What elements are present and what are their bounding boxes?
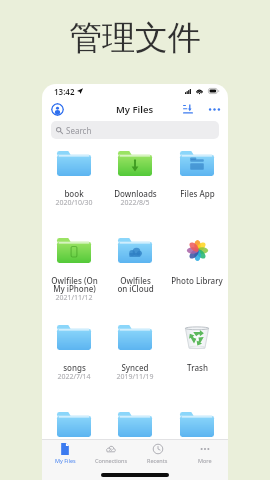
button[interactable]: My Files: [42, 443, 88, 464]
button[interactable]: Downloads: [105, 151, 165, 209]
staticText: Downloads: [114, 188, 157, 199]
button[interactable]: More: [181, 443, 228, 464]
button[interactable]: Search: [51, 121, 219, 139]
staticText: 2022/8/5: [120, 198, 150, 208]
button[interactable]: Account: [51, 103, 64, 116]
staticText: 2020/10/30: [55, 198, 93, 208]
button[interactable]: songs: [44, 325, 104, 383]
staticText: Connections: [95, 457, 128, 464]
staticText: Trash: [187, 362, 208, 373]
staticText: Recents: [147, 457, 168, 464]
staticText: More: [198, 457, 212, 464]
staticText: 13:42: [54, 86, 75, 96]
button[interactable]: Sort: [181, 102, 195, 116]
button[interactable]: More options: [207, 102, 221, 116]
staticText: My Files: [116, 103, 154, 116]
button[interactable]: Connections: [88, 443, 134, 464]
staticText: Files App: [180, 188, 215, 199]
button[interactable]: Trash: [167, 325, 227, 373]
staticText: Synced: [121, 362, 149, 373]
staticText: 2021/11/12: [55, 293, 93, 303]
button[interactable]: Files App: [167, 151, 227, 199]
button[interactable]: Owlfiles on iCloud: [105, 238, 165, 294]
staticText: 2022/7/14: [57, 372, 91, 382]
staticText: 管理文件: [69, 17, 201, 59]
staticText: songs: [63, 362, 86, 373]
button[interactable]: Owlfiles (On My iPhone): [44, 238, 104, 304]
staticText: Photo Library: [171, 275, 223, 286]
button[interactable]: Synced: [105, 325, 165, 383]
staticText: My Files: [55, 457, 76, 464]
button[interactable]: book: [44, 151, 104, 209]
staticText: Owlfiles (On My iPhone): [51, 275, 98, 294]
button[interactable]: Recents: [134, 443, 181, 464]
staticText: Search: [66, 125, 92, 136]
staticText: book: [64, 188, 84, 199]
staticText: Owlfiles on iCloud: [117, 275, 154, 294]
button[interactable]: Photo Library: [167, 238, 227, 286]
staticText: 2019/11/19: [116, 372, 154, 382]
